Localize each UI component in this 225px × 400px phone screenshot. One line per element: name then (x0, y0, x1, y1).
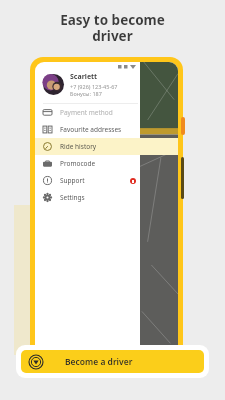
staticText: Favourite addresses (60, 125, 122, 134)
staticText: Ride history (60, 142, 97, 151)
button[interactable]: Support (35, 172, 178, 189)
staticText: Бонусы: 187 (70, 90, 102, 97)
staticText: Payment method (60, 108, 113, 117)
button[interactable]: Promocode (35, 155, 178, 172)
staticText: Support (60, 176, 85, 185)
button[interactable]: Scarlett (43, 72, 178, 97)
other: Become a driver (29, 355, 43, 369)
staticText: Settings (60, 193, 85, 202)
button[interactable]: Become a driver (21, 350, 204, 373)
staticText: Become a driver (65, 356, 133, 368)
staticText: Promocode (60, 159, 96, 168)
button[interactable]: Favourite addresses (35, 121, 178, 138)
staticText: Easy to become driver (0, 11, 225, 45)
button[interactable]: Ride history (35, 138, 178, 155)
button[interactable]: Payment method (35, 104, 178, 121)
button[interactable]: Settings (35, 189, 178, 206)
staticText: +7 (926) 123-45-67 (70, 83, 118, 90)
staticText: Scarlett (70, 72, 98, 82)
